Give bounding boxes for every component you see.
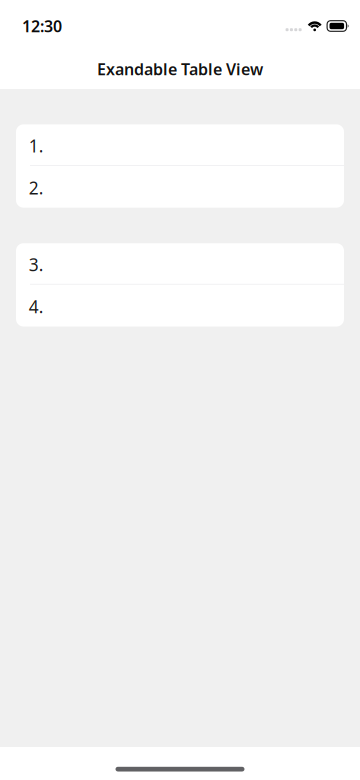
button[interactable]: 3.	[16, 243, 344, 285]
staticText: 2.	[29, 176, 44, 199]
button[interactable]: 4.	[16, 285, 344, 326]
staticText: Exandable Table View	[97, 58, 263, 80]
staticText: 12:30	[22, 15, 62, 37]
staticText: 3.	[29, 253, 44, 276]
staticText: 4.	[29, 295, 44, 318]
button[interactable]: 2.	[16, 166, 344, 208]
button[interactable]: 1.	[16, 124, 344, 166]
staticText: 1.	[29, 134, 44, 157]
